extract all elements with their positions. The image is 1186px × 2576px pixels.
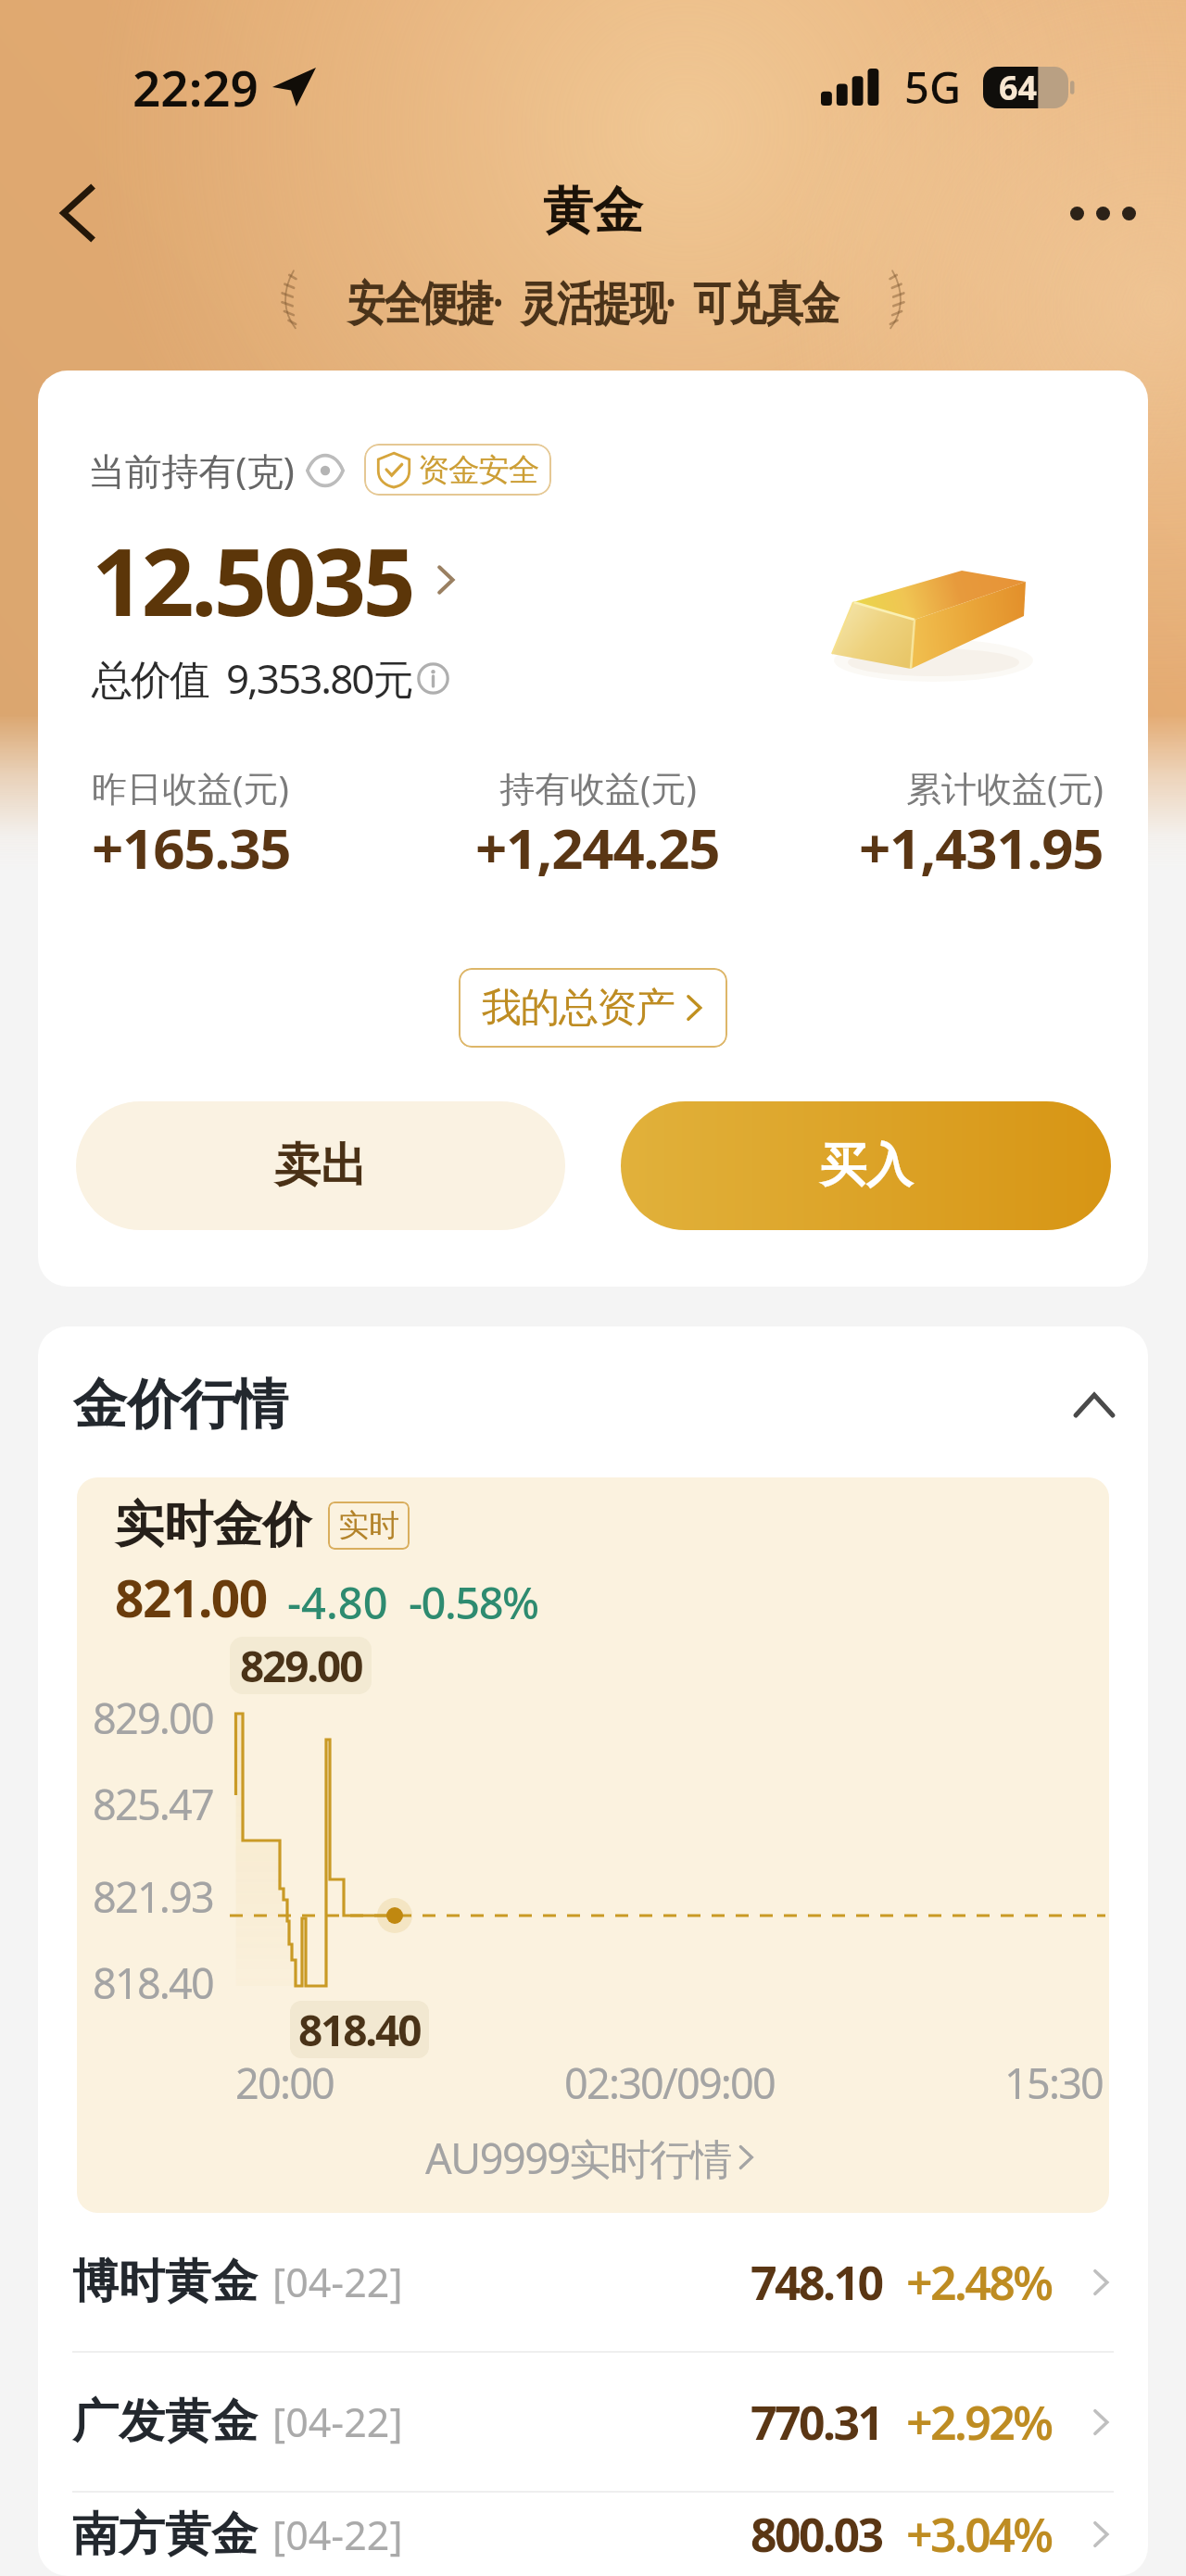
staticText: AU9999实时行情 bbox=[425, 2130, 731, 2186]
staticText: 金价行情 bbox=[73, 1371, 288, 1439]
staticText: [04-22] bbox=[272, 2507, 403, 2562]
staticText: 实时金价 bbox=[115, 1494, 311, 1556]
staticText: 22:29 bbox=[132, 54, 259, 120]
button[interactable]: 买入 bbox=[621, 1101, 1111, 1230]
staticText: -0.58% bbox=[409, 1573, 538, 1632]
button[interactable]: 12.5035 bbox=[86, 511, 469, 648]
staticText: 15:30 bbox=[1004, 2055, 1104, 2111]
staticText: 我的总资产 bbox=[482, 983, 675, 1033]
staticText: 748.10 bbox=[751, 2251, 882, 2314]
staticText: 累计收益(元) bbox=[906, 763, 1104, 811]
staticText: 829.00 bbox=[93, 1690, 213, 1746]
staticText: +3.04% bbox=[906, 2503, 1052, 2566]
staticText: 20:00 bbox=[235, 2055, 334, 2111]
staticText: 资金安全 bbox=[419, 450, 539, 490]
button[interactable]: 博时黄金 bbox=[38, 2213, 1148, 2351]
staticText: 当前持有(克) bbox=[88, 445, 295, 496]
staticText: 12.5035 bbox=[92, 517, 413, 643]
staticText: -4.80 bbox=[287, 1573, 388, 1632]
button[interactable]: Back bbox=[35, 170, 120, 256]
staticText: 02:30/09:00 bbox=[564, 2055, 775, 2111]
staticText: 818.40 bbox=[298, 2001, 421, 2058]
staticText: 黄金 bbox=[543, 180, 643, 243]
staticText: 821.00 bbox=[115, 1563, 267, 1632]
button[interactable]: 资金安全 bbox=[364, 444, 551, 496]
staticText: 821.93 bbox=[93, 1868, 213, 1925]
button[interactable]: 我的总资产 bbox=[459, 968, 727, 1048]
button[interactable]: 南方黄金 bbox=[38, 2493, 1148, 2576]
staticText: +1,244.25 bbox=[475, 810, 720, 886]
button[interactable]: 广发黄金 bbox=[38, 2353, 1148, 2491]
button[interactable]: Collapse section bbox=[1059, 1370, 1129, 1440]
staticText: 博时黄金 bbox=[72, 2253, 258, 2311]
staticText: [04-22] bbox=[272, 2255, 403, 2309]
button[interactable]: Total value info bbox=[406, 651, 460, 705]
staticText: 770.31 bbox=[751, 2391, 882, 2454]
staticText: 64 bbox=[999, 65, 1038, 110]
staticText: +165.35 bbox=[92, 810, 291, 886]
staticText: 持有收益(元) bbox=[499, 763, 697, 811]
staticText: 5G bbox=[904, 57, 962, 117]
staticText: 昨日收益(元) bbox=[92, 763, 289, 811]
staticText: +2.48% bbox=[906, 2251, 1052, 2314]
staticText: 829.00 bbox=[240, 1637, 362, 1694]
button[interactable]: Toggle balance visibility bbox=[295, 447, 356, 492]
staticText: 安全便捷· 灵活提现· 可兑真金 bbox=[348, 270, 839, 333]
staticText: 825.47 bbox=[93, 1776, 213, 1832]
staticText: 广发黄金 bbox=[72, 2393, 258, 2451]
staticText: 总价值 9,353.80元 bbox=[92, 650, 412, 706]
staticText: [04-22] bbox=[272, 2394, 403, 2449]
staticText: 实时 bbox=[338, 1506, 399, 1545]
staticText: 卖出 bbox=[274, 1137, 367, 1195]
staticText: 南方黄金 bbox=[72, 2506, 258, 2564]
staticText: +1,431.95 bbox=[859, 810, 1104, 886]
button[interactable]: 卖出 bbox=[76, 1101, 565, 1230]
staticText: +2.92% bbox=[906, 2391, 1052, 2454]
button[interactable]: More options bbox=[1060, 170, 1145, 256]
staticText: 买入 bbox=[820, 1137, 913, 1195]
staticText: 818.40 bbox=[93, 1954, 213, 2011]
button[interactable]: AU9999实时行情 bbox=[77, 2124, 1109, 2191]
staticText: 800.03 bbox=[751, 2503, 882, 2566]
